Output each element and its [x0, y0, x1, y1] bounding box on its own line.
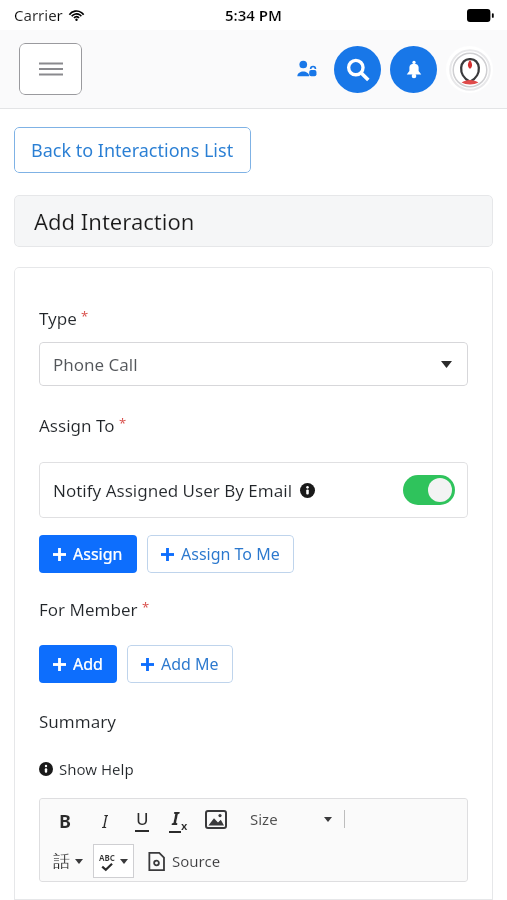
button[interactable]: Phone Call	[39, 342, 468, 386]
button[interactable]: Show Help	[39, 759, 134, 779]
button[interactable]: Open menu	[75, 859, 83, 864]
button[interactable]: Notifications	[390, 46, 437, 93]
staticText: Size	[250, 809, 278, 829]
staticText: I	[102, 809, 108, 829]
button[interactable]: Underline	[135, 807, 149, 832]
staticText: *	[142, 598, 150, 616]
staticText: ABC	[99, 852, 115, 863]
button[interactable]: Remove format	[169, 806, 188, 833]
staticText: Show Help	[59, 759, 134, 779]
button[interactable]: Insert image	[206, 811, 226, 828]
button[interactable]: Search	[334, 46, 381, 93]
staticText: Assign To	[39, 414, 115, 437]
staticText: *	[119, 414, 127, 432]
staticText: 話	[53, 851, 70, 872]
staticText: Assign	[73, 543, 123, 565]
button[interactable]: Back to Interactions List	[14, 127, 251, 173]
button[interactable]: B	[55, 809, 75, 829]
button[interactable]: Private user	[290, 53, 324, 87]
staticText: Add Me	[161, 653, 219, 675]
button[interactable]: Language	[53, 851, 70, 872]
staticText: B	[59, 809, 71, 829]
staticText: I	[172, 806, 179, 831]
staticText: Phone Call	[53, 353, 138, 376]
button[interactable]: Organization logo	[446, 46, 493, 93]
staticText: U	[136, 807, 149, 830]
button[interactable]: Add Me	[127, 645, 233, 683]
button[interactable]: Open menu	[324, 817, 332, 822]
button[interactable]: Spell check	[93, 844, 134, 878]
staticText: Assign To Me	[181, 543, 280, 565]
staticText: *	[81, 307, 89, 325]
button[interactable]: Menu	[19, 43, 82, 95]
button[interactable]: Open menu	[120, 859, 128, 864]
button[interactable]: Assign To Me	[147, 535, 294, 573]
button[interactable]: Add	[39, 645, 117, 683]
staticText: Summary	[39, 710, 116, 733]
staticText: 5:34 PM	[225, 5, 282, 25]
staticText: Notify Assigned User By Email	[53, 479, 293, 502]
staticText: x	[181, 818, 188, 833]
staticText: Carrier	[14, 5, 63, 25]
button[interactable]: Notify Assigned User By Email	[39, 462, 468, 518]
staticText: Add	[73, 653, 103, 675]
staticText: Back to Interactions List	[31, 138, 234, 163]
staticText: For Member	[39, 598, 138, 621]
staticText: Source	[172, 851, 221, 871]
button[interactable]: Source	[148, 851, 221, 871]
staticText: Type	[39, 307, 77, 330]
button[interactable]: I	[95, 809, 115, 829]
button[interactable]: Assign	[39, 535, 137, 573]
staticText: Add Interaction	[34, 206, 195, 236]
